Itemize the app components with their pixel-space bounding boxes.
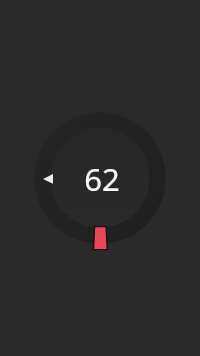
button[interactable]: Decrease (37, 166, 63, 192)
staticText: 62 (84, 158, 120, 200)
button[interactable]: Temperature dial, 62 (34, 112, 166, 244)
